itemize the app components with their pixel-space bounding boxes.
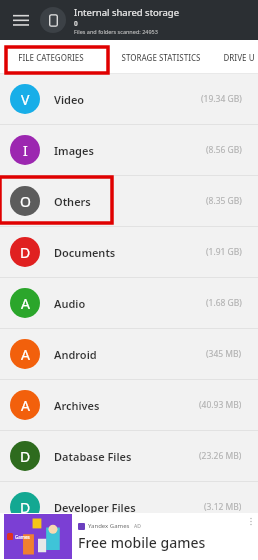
staticText: (1.91 GB) <box>206 246 242 258</box>
staticText: 0 <box>74 19 78 28</box>
staticText: (23.26 MB) <box>199 450 242 462</box>
staticText: FILE CATEGORIES <box>18 52 84 63</box>
button[interactable]: I <box>0 125 258 175</box>
button[interactable]: Ad options <box>244 513 258 560</box>
button[interactable]: V <box>0 74 258 124</box>
staticText: Video <box>54 92 85 107</box>
staticText: Images <box>54 143 94 158</box>
staticText: Audio <box>54 296 86 311</box>
button[interactable]: Open navigation menu <box>8 7 34 33</box>
staticText: (345 MB) <box>206 348 242 360</box>
staticText: Documents <box>54 245 116 260</box>
staticText: Developer Files <box>54 500 136 515</box>
staticText: DRIVE U <box>223 52 255 63</box>
staticText: Internal shared storage <box>74 6 180 19</box>
button[interactable]: STORAGE STATISTICS <box>102 40 220 74</box>
staticText: I <box>23 141 28 160</box>
staticText: D <box>20 498 31 517</box>
button[interactable]: D <box>0 227 258 277</box>
staticText: V <box>21 90 30 109</box>
staticText: Others <box>54 194 91 209</box>
staticText: AD <box>134 523 141 530</box>
button[interactable]: D <box>0 482 258 532</box>
staticText: O <box>20 192 31 211</box>
staticText: Yandex Games <box>88 522 130 530</box>
staticText: (1.68 GB) <box>206 297 242 309</box>
staticText: (19.34 GB) <box>201 93 242 105</box>
staticText: STORAGE STATISTICS <box>121 52 201 63</box>
button[interactable]: A <box>0 329 258 379</box>
staticText: Games <box>15 534 30 540</box>
staticText: (8.35 GB) <box>206 195 242 207</box>
staticText: Files and folders scanned: 24953 <box>74 28 158 35</box>
staticText: Database Files <box>54 449 132 464</box>
staticText: Android <box>54 347 97 362</box>
button[interactable]: Internal shared storage <box>40 7 66 33</box>
button[interactable]: DRIVE U <box>220 40 258 74</box>
button[interactable]: A <box>0 380 258 430</box>
staticText: Free mobile games <box>78 533 206 552</box>
staticText: A <box>21 345 30 364</box>
button[interactable]: O <box>0 176 258 226</box>
button[interactable]: Games <box>0 513 258 560</box>
staticText: D <box>20 243 31 262</box>
staticText: A <box>21 294 30 313</box>
button[interactable]: D <box>0 431 258 481</box>
staticText: A <box>21 396 30 415</box>
staticText: (3.12 MB) <box>204 501 242 513</box>
staticText: (40.93 MB) <box>199 399 242 411</box>
button[interactable]: A <box>0 278 258 328</box>
staticText: (8.56 GB) <box>206 144 242 156</box>
staticText: Archives <box>54 398 100 413</box>
staticText: D <box>20 447 31 466</box>
button[interactable]: FILE CATEGORIES <box>0 40 102 74</box>
